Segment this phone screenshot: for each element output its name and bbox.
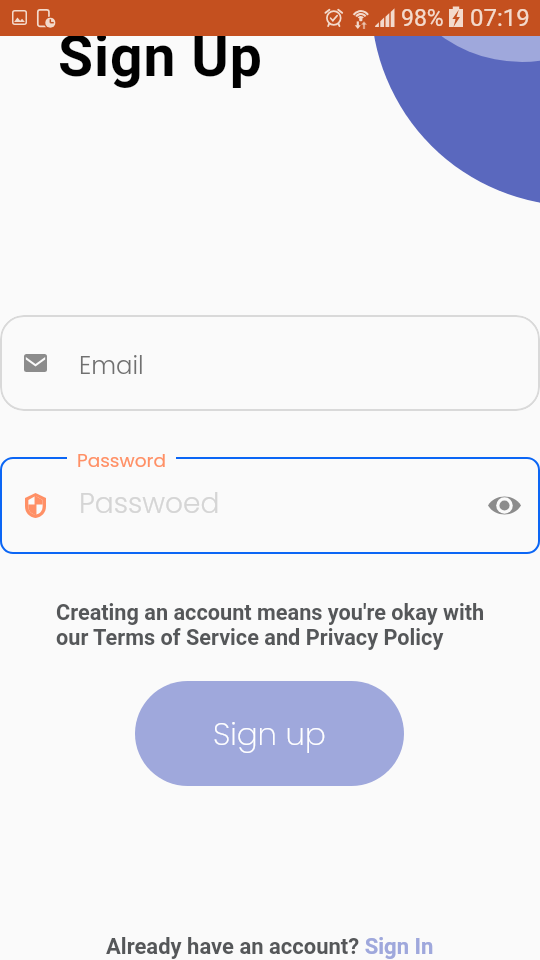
staticText: 98%	[401, 5, 444, 32]
button[interactable]: Email	[0, 315, 540, 411]
button[interactable]: Sign up	[135, 681, 404, 786]
button[interactable]: Passwoed	[0, 457, 540, 554]
staticText: Passwoed	[79, 484, 220, 523]
staticText: Creating an account means you're okay wi…	[56, 600, 485, 650]
staticText: 07:19	[470, 4, 530, 32]
staticText: Password	[77, 448, 166, 474]
button[interactable]: Already have an account? Sign In	[106, 934, 434, 960]
button[interactable]: Show password	[482, 483, 526, 527]
staticText: Email	[79, 348, 144, 382]
staticText: Sign up	[213, 712, 326, 755]
staticText: Sign Up	[58, 23, 263, 90]
